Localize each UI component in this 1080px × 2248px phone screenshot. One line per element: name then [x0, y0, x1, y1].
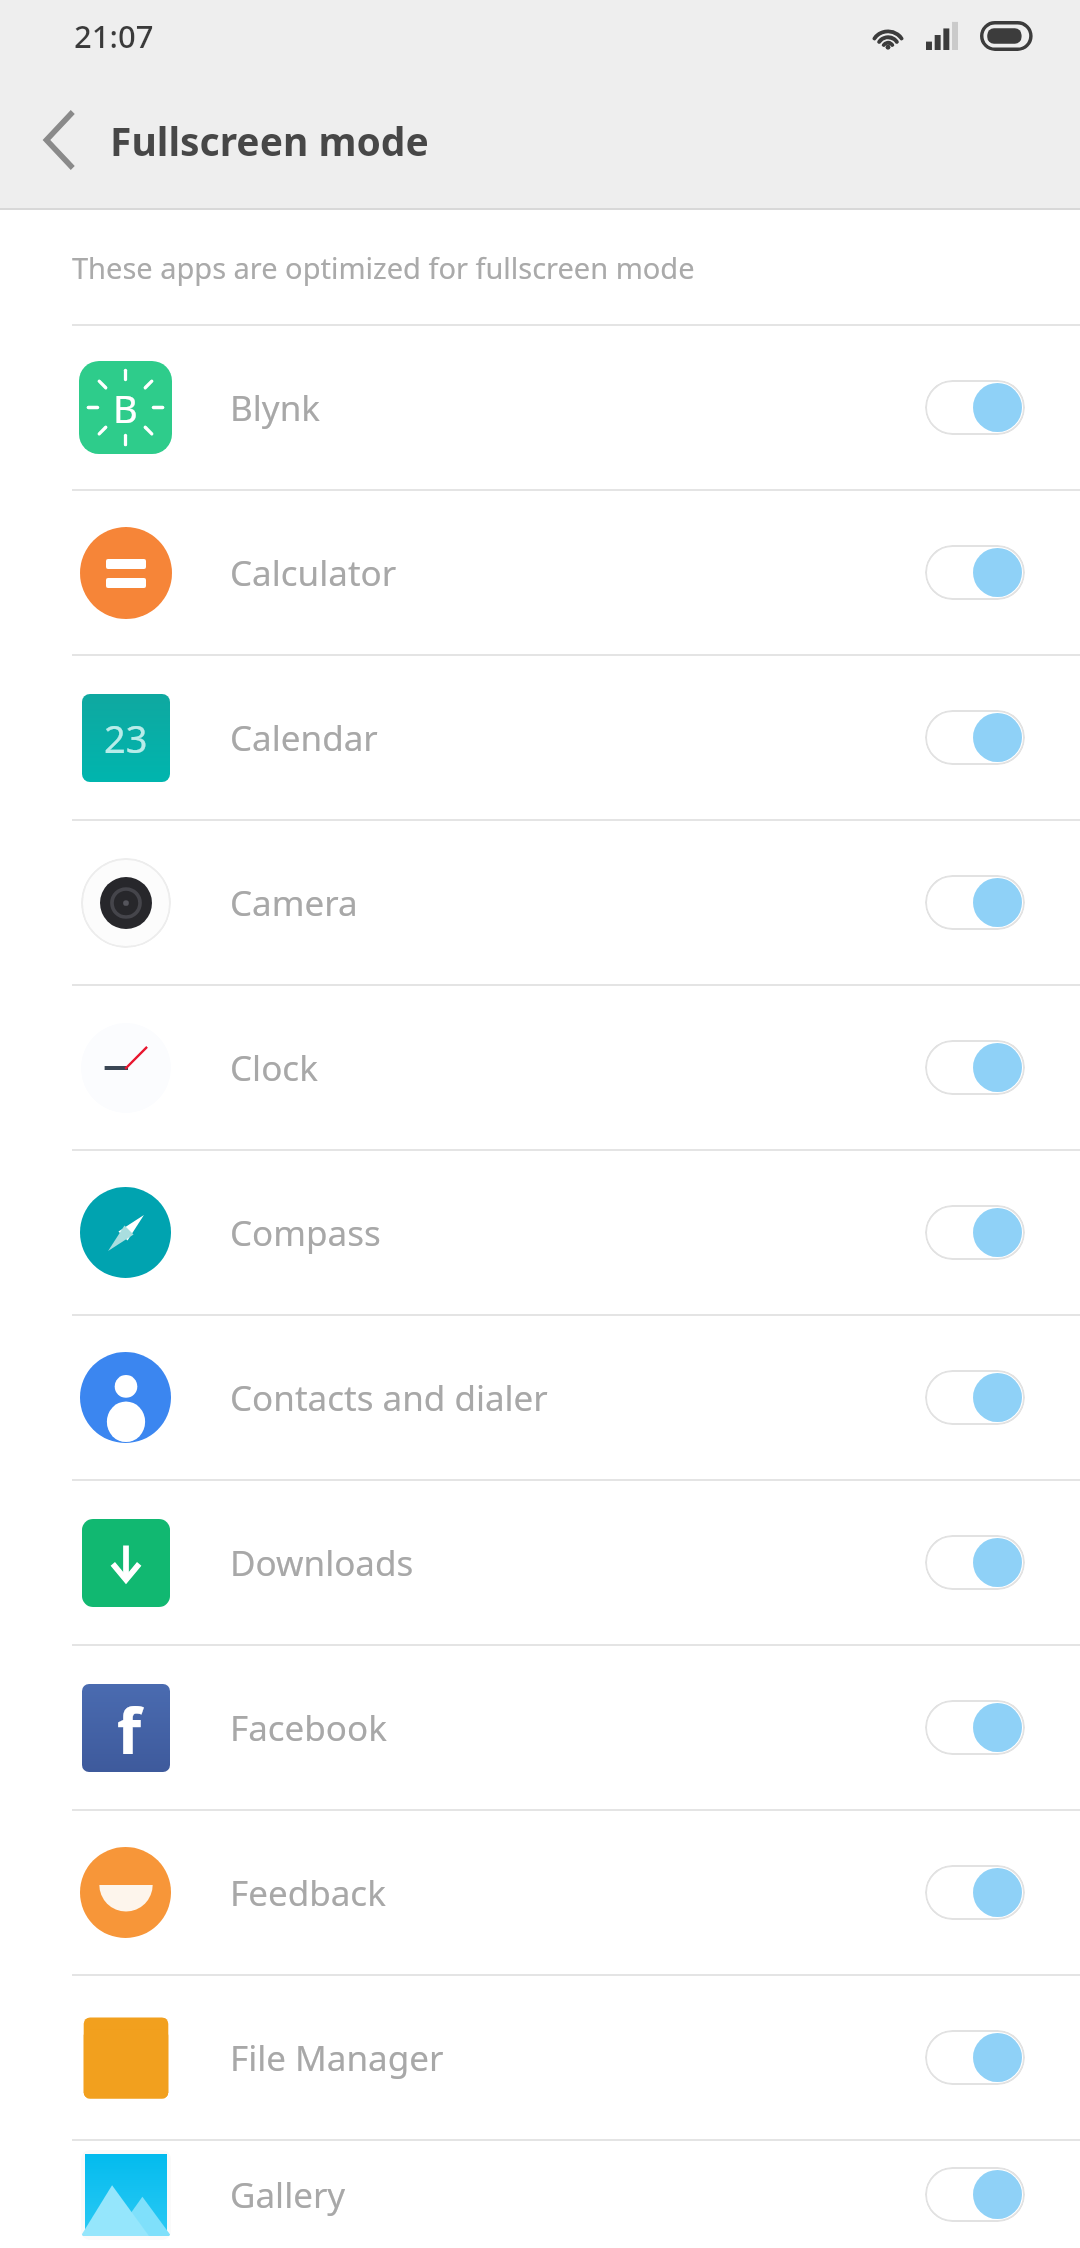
- staticText: Blynk: [230, 384, 925, 432]
- button[interactable]: Toggle Calculator: [925, 545, 1025, 600]
- button[interactable]: Toggle Calendar: [925, 710, 1025, 765]
- button[interactable]: Feedback: [0, 1811, 1080, 1974]
- staticText: f: [117, 1688, 141, 1772]
- button[interactable]: Toggle Facebook: [925, 1700, 1025, 1755]
- button[interactable]: Camera: [0, 821, 1080, 984]
- button[interactable]: Toggle Clock: [925, 1040, 1025, 1095]
- button[interactable]: File Manager: [0, 1976, 1080, 2139]
- button[interactable]: Toggle Downloads: [925, 1535, 1025, 1590]
- button[interactable]: Contacts and dialer: [0, 1316, 1080, 1479]
- button[interactable]: B: [0, 326, 1080, 489]
- staticText: Facebook: [230, 1704, 925, 1752]
- button[interactable]: Calculator: [0, 491, 1080, 654]
- staticText: Camera: [230, 879, 925, 927]
- staticText: File Manager: [230, 2034, 925, 2082]
- button[interactable]: Toggle Gallery: [925, 2167, 1025, 2222]
- button[interactable]: Toggle Camera: [925, 875, 1025, 930]
- button[interactable]: Toggle Contacts and dialer: [925, 1370, 1025, 1425]
- staticText: 21:07: [74, 15, 154, 57]
- staticText: Downloads: [230, 1539, 925, 1587]
- button[interactable]: Toggle Feedback: [925, 1865, 1025, 1920]
- staticText: Gallery: [230, 2171, 925, 2219]
- button[interactable]: Downloads: [0, 1481, 1080, 1644]
- staticText: These apps are optimized for fullscreen …: [72, 248, 695, 287]
- button[interactable]: Back: [20, 100, 100, 180]
- staticText: Feedback: [230, 1869, 925, 1917]
- staticText: B: [113, 382, 138, 434]
- staticText: Calendar: [230, 714, 925, 762]
- staticText: Compass: [230, 1209, 925, 1257]
- staticText: Contacts and dialer: [230, 1374, 925, 1422]
- staticText: Calculator: [230, 549, 925, 597]
- staticText: Clock: [230, 1044, 925, 1092]
- staticText: Fullscreen mode: [110, 114, 429, 167]
- button[interactable]: f: [0, 1646, 1080, 1809]
- button[interactable]: Gallery: [0, 2141, 1080, 2248]
- button[interactable]: Compass: [0, 1151, 1080, 1314]
- button[interactable]: Clock: [0, 986, 1080, 1149]
- button[interactable]: Toggle Compass: [925, 1205, 1025, 1260]
- button[interactable]: 23: [0, 656, 1080, 819]
- button[interactable]: Toggle Blynk: [925, 380, 1025, 435]
- button[interactable]: Toggle File Manager: [925, 2030, 1025, 2085]
- staticText: 23: [104, 712, 148, 764]
